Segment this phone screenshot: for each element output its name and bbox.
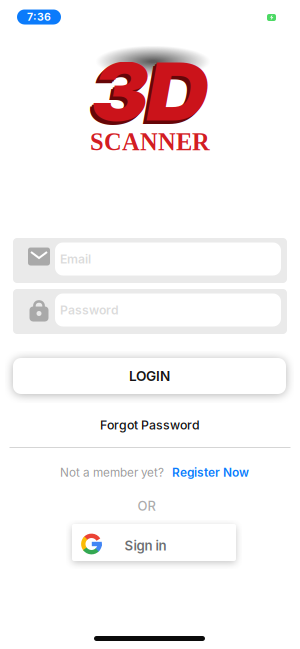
staticText: 3D — [95, 43, 204, 140]
button[interactable]: Forgot Password — [100, 418, 200, 432]
staticText: LOGIN — [129, 368, 170, 384]
staticText: OR — [137, 498, 155, 514]
button[interactable]: Email — [13, 238, 287, 283]
button[interactable]: Time — [17, 9, 61, 24]
staticText: Register Now — [172, 465, 249, 480]
button[interactable]: Password — [13, 289, 287, 334]
button[interactable]: Sign in with Google — [72, 524, 236, 561]
staticText: 7:36 — [27, 11, 51, 23]
staticText: Sign in — [124, 538, 166, 554]
staticText: Forgot Password — [100, 418, 200, 432]
staticText: Email — [60, 252, 91, 266]
staticText: 3D — [92, 47, 201, 143]
button[interactable]: LOGIN — [13, 358, 286, 394]
staticText: SCANNER — [90, 128, 210, 155]
staticText: 3D — [94, 45, 203, 142]
button[interactable]: Register Now — [172, 465, 249, 480]
staticText: Not a member yet? — [60, 465, 164, 480]
staticText: Password — [60, 303, 119, 317]
